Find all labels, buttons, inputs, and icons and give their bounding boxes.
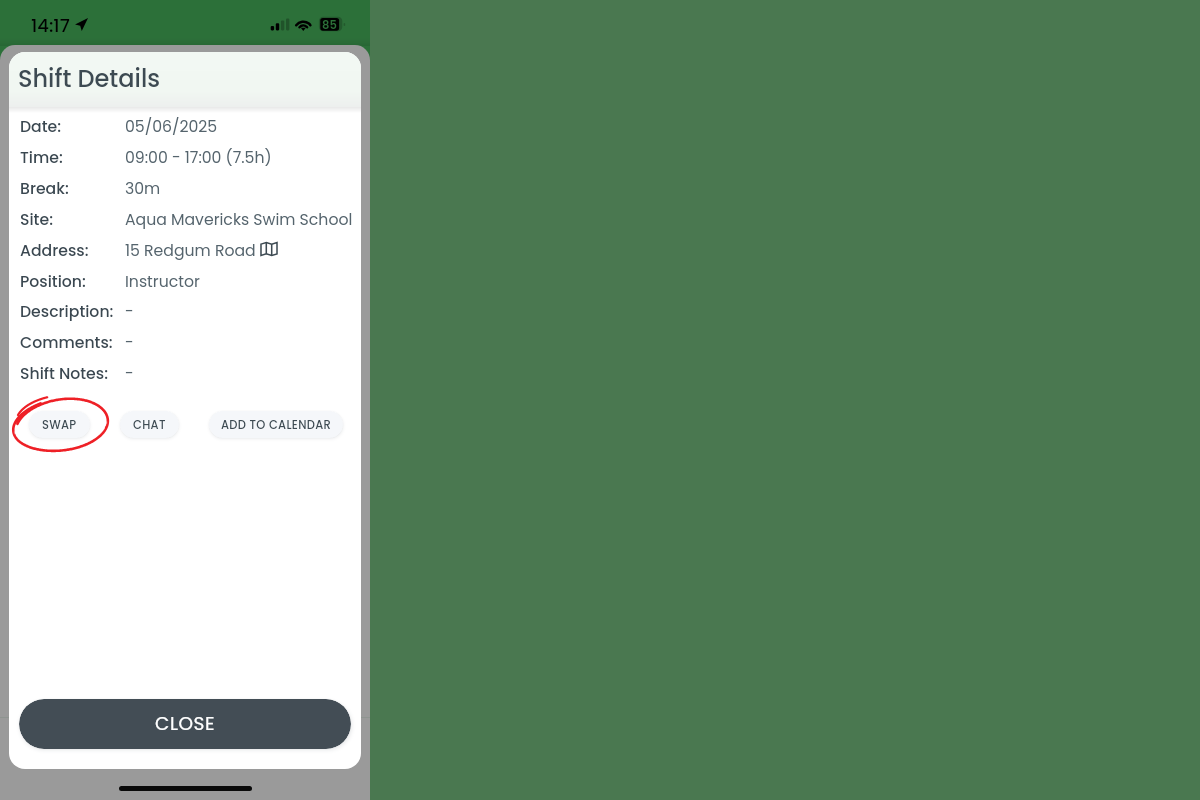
staticText: 05/06/2025 [125,116,218,138]
staticText: Site: [20,209,53,231]
staticText: Aqua Mavericks Swim School [125,209,353,231]
other: Wi-Fi connected [294,16,313,32]
staticText: Address: [20,240,89,262]
button[interactable]: CLOSE [19,699,351,749]
staticText: 09:00 - 17:00 (7.5h) [125,147,272,169]
staticText: Date: [20,116,62,138]
button[interactable]: CHAT [120,411,179,438]
staticText: CLOSE [155,711,216,737]
staticText: Break: [20,178,69,200]
staticText: 15 Redgum Road [125,240,256,262]
staticText: 30m [125,178,161,200]
other: Location in use [75,18,88,31]
staticText: 14:17 [31,13,70,38]
button[interactable]: Open address in maps [260,240,278,258]
staticText: Instructor [125,271,200,293]
staticText: Shift Details [18,62,161,96]
staticText: - [125,363,134,385]
staticText: - [125,332,134,354]
staticText: Shift Notes: [20,363,108,385]
other: Cellular signal [270,18,290,31]
staticText: 85 [322,17,337,33]
other: Battery 85 percent [318,16,346,33]
staticText: CHAT [133,417,166,433]
button[interactable]: ADD TO CALENDAR [209,411,343,438]
staticText: Comments: [20,332,113,354]
staticText: Description: [20,301,114,323]
staticText: Position: [20,271,86,293]
staticText: ADD TO CALENDAR [221,417,332,433]
staticText: - [125,301,134,323]
staticText: Time: [20,147,63,169]
button[interactable]: SWAP [29,411,90,438]
staticText: SWAP [42,417,77,433]
